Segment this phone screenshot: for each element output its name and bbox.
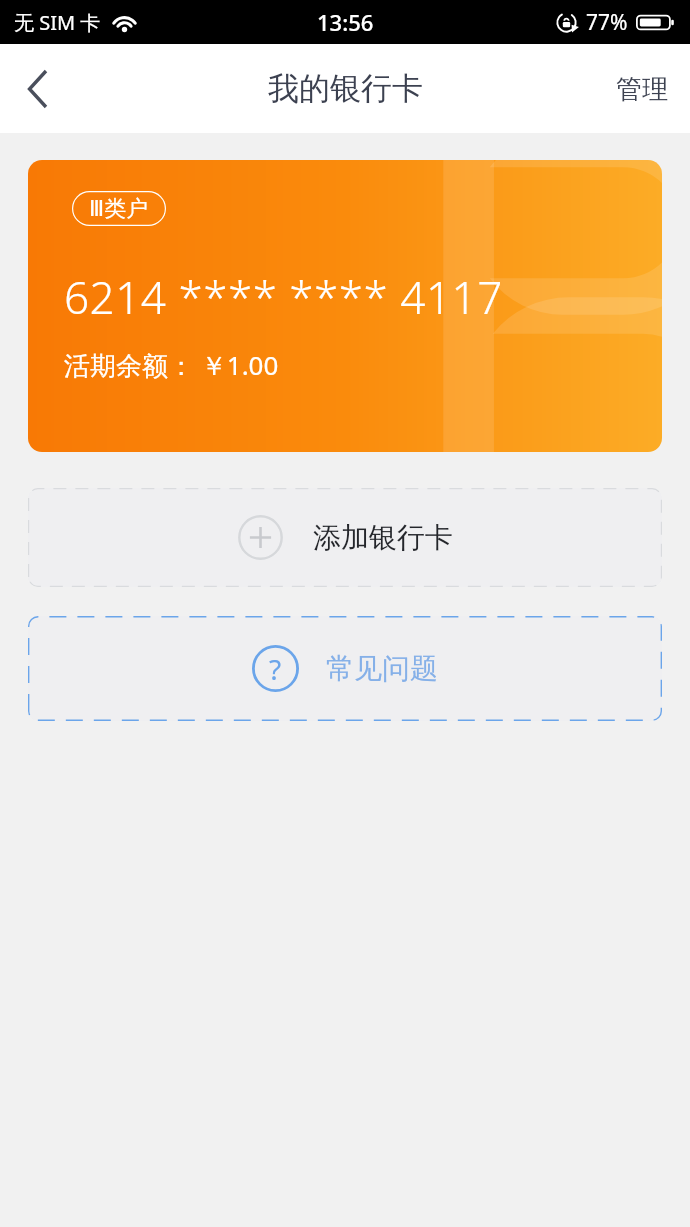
button[interactable]: 添加银行卡 <box>28 488 662 587</box>
staticText: 常见问题 <box>326 651 438 686</box>
staticText: Ⅲ类户 <box>89 195 149 223</box>
button[interactable]: Ⅲ类户 <box>28 160 662 452</box>
staticText: 活期余额： ￥1.00 <box>64 347 279 383</box>
staticText: 6214 **** **** 4117 <box>64 267 503 327</box>
staticText: 77% <box>586 8 628 37</box>
staticText: 添加银行卡 <box>313 520 453 555</box>
staticText: ? <box>269 650 282 688</box>
staticText: 13:56 <box>317 7 374 37</box>
staticText: 管理 <box>616 73 668 106</box>
button[interactable]: 管理 <box>594 51 690 127</box>
staticText: 我的银行卡 <box>268 69 423 108</box>
staticText: 无 SIM 卡 <box>14 9 101 36</box>
button[interactable]: ? <box>28 616 662 721</box>
button[interactable]: Back <box>0 51 76 127</box>
